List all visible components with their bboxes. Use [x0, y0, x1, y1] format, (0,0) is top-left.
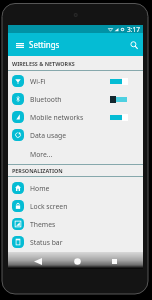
button[interactable]: Data usage: [8, 126, 143, 144]
staticText: Settings: [29, 39, 60, 50]
staticText: Bluetooth: [30, 95, 62, 104]
button[interactable]: Home: [70, 254, 84, 268]
button[interactable]: Themes: [8, 215, 143, 233]
staticText: Status bar: [30, 238, 63, 247]
staticText: WIRELESS & NETWORKS: [12, 60, 75, 67]
staticText: Data usage: [30, 131, 67, 140]
button[interactable]: Back: [31, 254, 45, 268]
staticText: More...: [30, 150, 53, 159]
button[interactable]: More...: [8, 144, 143, 164]
staticText: PERSONALIZATION: [12, 167, 63, 174]
staticText: Home: [30, 184, 50, 193]
staticText: Lock screen: [30, 202, 68, 211]
button[interactable]: Lock screen: [8, 197, 143, 215]
button[interactable]: Home: [8, 179, 143, 197]
button[interactable]: Search: [129, 38, 139, 52]
button[interactable]: Mobile networks: [8, 108, 143, 126]
button[interactable]: Status bar: [8, 233, 143, 251]
staticText: 3:17: [127, 25, 140, 33]
button[interactable]: Recents: [107, 254, 121, 268]
staticText: Themes: [30, 220, 56, 229]
button[interactable]: Open navigation drawer: [16, 38, 24, 52]
staticText: Mobile networks: [30, 113, 84, 122]
button[interactable]: Bluetooth: [8, 90, 143, 108]
staticText: Wi-Fi: [30, 77, 46, 86]
button[interactable]: Wi-Fi: [8, 72, 143, 90]
